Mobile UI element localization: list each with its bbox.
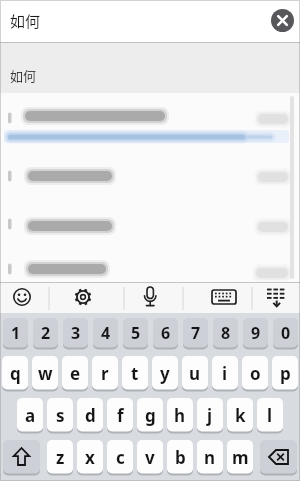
button[interactable]: 8 (213, 318, 238, 348)
button[interactable]: v (137, 440, 163, 474)
button[interactable] (0, 158, 300, 198)
button[interactable]: 3 (63, 318, 88, 348)
button[interactable]: 6 (153, 318, 178, 348)
button[interactable]: 5 (123, 318, 148, 348)
staticText: m (232, 446, 249, 469)
button[interactable]: z (47, 440, 73, 474)
staticText: b (175, 446, 186, 469)
button[interactable]: y (152, 356, 178, 390)
staticText: n (204, 446, 216, 469)
staticText: i (222, 362, 228, 385)
button[interactable] (0, 126, 300, 146)
staticText: q (10, 362, 21, 385)
staticText: x (85, 446, 95, 469)
button[interactable] (3, 440, 40, 474)
staticText: l (267, 404, 273, 427)
button[interactable]: f (107, 398, 133, 432)
button[interactable] (0, 283, 49, 313)
button[interactable] (49, 283, 124, 313)
button[interactable]: p (272, 356, 298, 390)
button[interactable]: q (2, 356, 28, 390)
staticText: 9 (251, 322, 261, 344)
button[interactable] (124, 283, 183, 313)
staticText: p (280, 362, 291, 385)
button[interactable]: k (227, 398, 253, 432)
button[interactable] (183, 283, 252, 313)
button[interactable]: 9 (243, 318, 268, 348)
button[interactable]: a (17, 398, 43, 432)
staticText: c (116, 446, 125, 469)
button[interactable]: 1 (3, 318, 28, 348)
staticText: 如何 (10, 66, 37, 85)
staticText: z (56, 446, 65, 469)
button[interactable]: l (257, 398, 283, 432)
staticText: k (235, 404, 246, 427)
button[interactable]: u (182, 356, 208, 390)
button[interactable] (252, 283, 300, 313)
button[interactable]: b (167, 440, 193, 474)
button[interactable]: h (167, 398, 193, 432)
button[interactable]: s (47, 398, 73, 432)
button[interactable]: 7 (183, 318, 208, 348)
staticText: 0 (281, 322, 291, 344)
button[interactable]: n (197, 440, 223, 474)
staticText: v (145, 446, 155, 469)
button[interactable]: o (242, 356, 268, 390)
staticText: 1 (11, 322, 21, 344)
staticText: h (174, 404, 186, 427)
button[interactable]: r (92, 356, 118, 390)
button[interactable] (0, 206, 300, 246)
staticText: g (145, 404, 156, 427)
button[interactable]: i (212, 356, 238, 390)
button[interactable] (271, 9, 294, 32)
staticText: f (117, 404, 124, 427)
staticText: e (70, 362, 81, 385)
button[interactable]: e (62, 356, 88, 390)
button[interactable] (0, 0, 300, 42)
staticText: t (131, 362, 139, 385)
staticText: s (56, 404, 65, 427)
staticText: o (250, 362, 261, 385)
staticText: 4 (101, 322, 111, 344)
button[interactable]: m (227, 440, 253, 474)
button[interactable] (260, 440, 297, 474)
staticText: a (25, 404, 36, 427)
button[interactable]: 0 (273, 318, 298, 348)
button[interactable]: 2 (33, 318, 58, 348)
staticText: 7 (191, 322, 201, 344)
button[interactable] (0, 98, 300, 126)
staticText: 5 (131, 322, 141, 344)
staticText: y (160, 362, 170, 385)
staticText: 如何 (10, 10, 41, 32)
staticText: j (207, 404, 213, 427)
staticText: w (38, 362, 53, 385)
staticText: 2 (41, 322, 51, 344)
button[interactable]: d (77, 398, 103, 432)
staticText: 6 (161, 322, 171, 344)
staticText: 8 (221, 322, 231, 344)
button[interactable]: t (122, 356, 148, 390)
button[interactable]: x (77, 440, 103, 474)
button[interactable]: c (107, 440, 133, 474)
staticText: d (85, 404, 96, 427)
staticText: 3 (71, 322, 81, 344)
button[interactable]: w (32, 356, 58, 390)
button[interactable]: g (137, 398, 163, 432)
staticText: r (101, 362, 109, 385)
button[interactable]: 4 (93, 318, 118, 348)
button[interactable] (0, 254, 300, 282)
button[interactable]: j (197, 398, 223, 432)
staticText: u (189, 362, 201, 385)
